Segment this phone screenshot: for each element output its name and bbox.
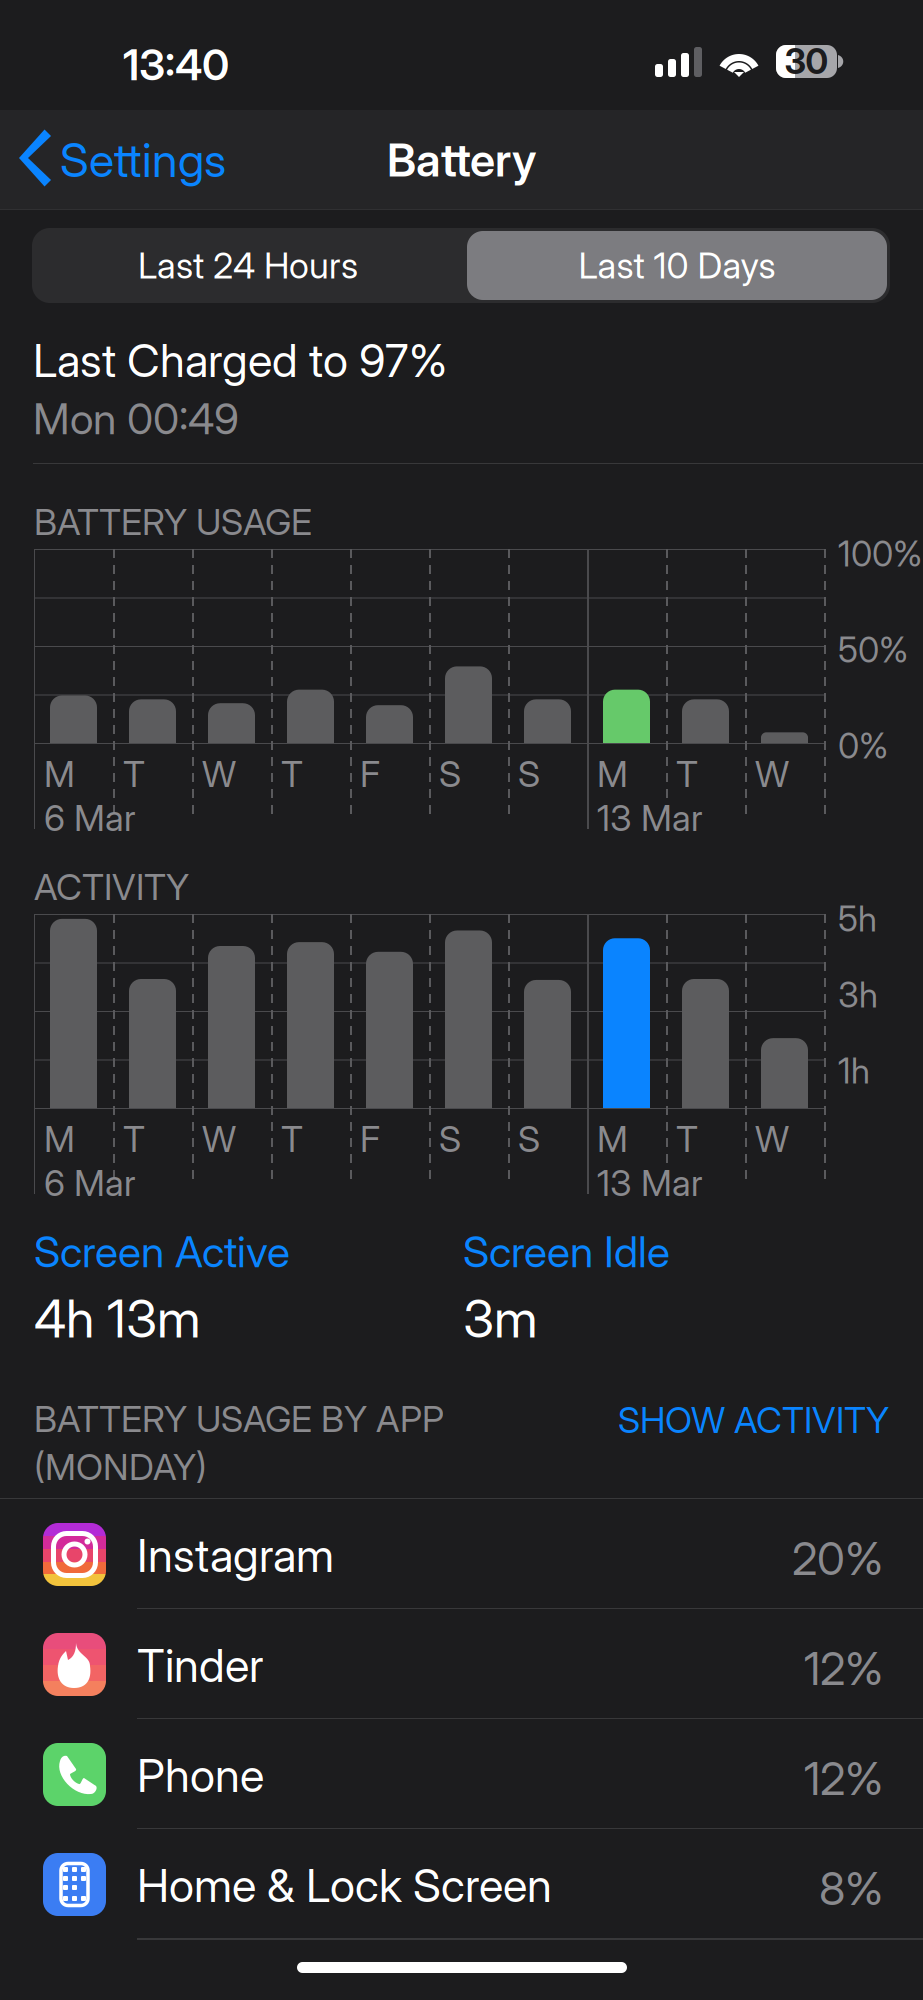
staticText: M [597, 752, 628, 796]
staticText: SHOW ACTIVITY [618, 1398, 889, 1442]
staticText: 13 Mar [597, 1161, 703, 1205]
staticText: T [676, 752, 698, 796]
button[interactable]: Last 24 Hours [32, 228, 464, 303]
staticText: 20% [792, 1531, 883, 1586]
staticText: S [439, 1117, 461, 1161]
staticText: M [44, 1117, 75, 1161]
staticText: 5h [838, 898, 877, 940]
button[interactable]: Last 10 Days [464, 228, 890, 303]
staticText: Mon 00:49 [33, 393, 239, 445]
staticText: T [676, 1117, 698, 1161]
staticText: S [518, 752, 540, 796]
staticText: 4h 13m [34, 1287, 201, 1350]
staticText: ACTIVITY [34, 865, 189, 909]
staticText: 12% [804, 1751, 883, 1806]
staticText: Phone [137, 1748, 264, 1803]
staticText: W [755, 752, 789, 796]
staticText: T [123, 1117, 145, 1161]
staticText: F [360, 752, 380, 796]
staticText: W [755, 1117, 789, 1161]
staticText: M [44, 752, 75, 796]
staticText: Tinder [137, 1638, 264, 1693]
staticText: 3h [838, 974, 878, 1016]
staticText: T [281, 752, 303, 796]
staticText: 50% [838, 629, 908, 671]
staticText: M [597, 1117, 628, 1161]
staticText: (MONDAY) [34, 1445, 207, 1489]
staticText: 13 Mar [597, 796, 703, 840]
staticText: 6 Mar [44, 1161, 136, 1205]
button[interactable]: Phone [0, 1719, 923, 1829]
staticText: BATTERY USAGE BY APP [34, 1397, 444, 1441]
button[interactable]: Home & Lock Screen [0, 1829, 923, 1939]
staticText: 100% [838, 533, 922, 575]
staticText: F [360, 1117, 380, 1161]
staticText: 12% [804, 1641, 883, 1696]
staticText: W [202, 1117, 236, 1161]
staticText: 1h [838, 1050, 870, 1092]
staticText: Settings [60, 132, 226, 188]
button[interactable]: Instagram [0, 1499, 923, 1609]
staticText: Home & Lock Screen [137, 1858, 552, 1913]
staticText: Instagram [137, 1528, 334, 1583]
staticText: W [202, 752, 236, 796]
staticText: T [123, 752, 145, 796]
staticText: BATTERY USAGE [34, 500, 312, 544]
staticText: Screen Active [34, 1226, 290, 1278]
staticText: 3m [463, 1287, 538, 1350]
staticText: 0% [838, 725, 888, 767]
staticText: Screen Idle [463, 1226, 670, 1278]
button[interactable]: Settings [24, 132, 238, 188]
staticText: 13:40 [123, 39, 229, 91]
button[interactable]: SHOW ACTIVITY [0, 1395, 889, 1445]
staticText: Battery [387, 133, 536, 187]
staticText: 8% [819, 1861, 883, 1916]
staticText: Last 10 Days [578, 244, 775, 287]
staticText: 30 [784, 40, 828, 82]
staticText: Last Charged to 97% [33, 333, 447, 388]
staticText: 6 Mar [44, 796, 136, 840]
staticText: T [281, 1117, 303, 1161]
staticText: S [439, 752, 461, 796]
staticText: S [518, 1117, 540, 1161]
staticText: Last 24 Hours [138, 244, 358, 287]
button[interactable]: Tinder [0, 1609, 923, 1719]
